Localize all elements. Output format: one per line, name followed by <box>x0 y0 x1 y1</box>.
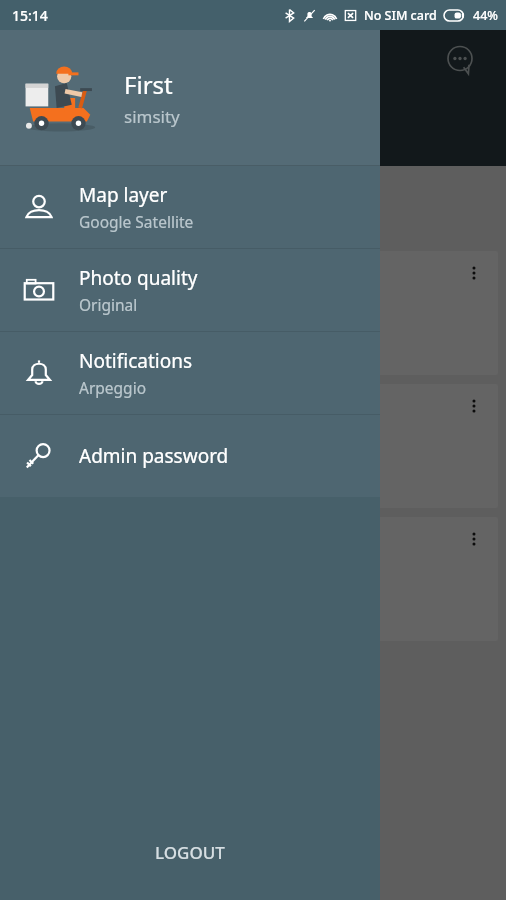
button[interactable]: More options <box>8 517 498 641</box>
staticText: LOGOUT <box>155 841 225 864</box>
button[interactable]: Photo quality <box>0 249 380 331</box>
staticText: 1 h / 1 days <box>20 211 122 237</box>
button[interactable]: More options <box>456 521 492 557</box>
staticText: First <box>124 68 173 101</box>
button[interactable]: Admin password <box>0 415 380 497</box>
staticText: Google Satellite <box>79 211 194 232</box>
button[interactable]: More options <box>8 384 498 508</box>
staticText: simsity <box>124 105 180 128</box>
staticText: 44% <box>473 7 498 24</box>
button[interactable]: Notifications <box>0 332 380 414</box>
staticText: 12/2018 11/ <box>16 97 219 130</box>
staticText: Map layer <box>79 182 168 208</box>
button[interactable]: More options <box>8 251 498 375</box>
staticText: Michig… <box>18 455 85 478</box>
button[interactable]: Messages <box>438 38 482 82</box>
button[interactable]: More options <box>456 388 492 424</box>
staticText: Arpeggio <box>79 377 147 398</box>
staticText: Notifications <box>79 348 193 374</box>
staticText: Estimated/ <box>20 186 101 208</box>
button[interactable]: Map layer <box>0 166 380 248</box>
staticText: No SIM card <box>364 7 437 24</box>
staticText: 15:14 <box>12 6 48 25</box>
button[interactable]: More options <box>456 255 492 291</box>
button[interactable]: Locate <box>16 38 60 82</box>
button[interactable]: LOGOUT <box>0 822 380 882</box>
staticText: Admin password <box>79 443 229 469</box>
staticText: Photo quality <box>79 265 198 291</box>
staticText: Original <box>79 294 138 315</box>
